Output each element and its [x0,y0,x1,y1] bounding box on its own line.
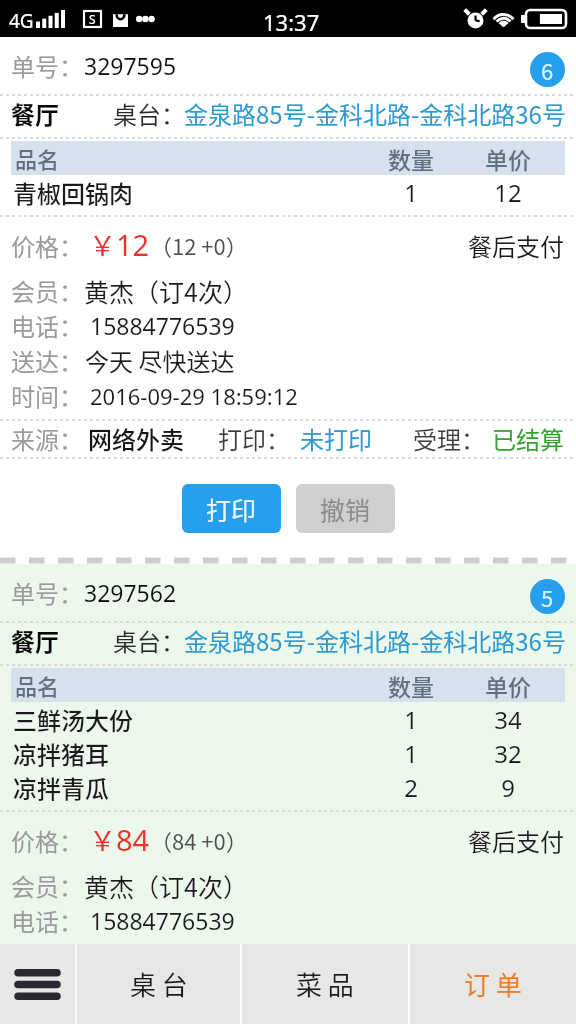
staticText: 单号： [11,48,83,83]
button[interactable]: Menu [0,944,75,1024]
staticText: 已结算 [492,421,564,455]
staticText: 未打印 [300,421,372,455]
button[interactable]: 6 [530,52,565,87]
staticText: 单价 [448,669,568,702]
staticText: 餐后支付 [468,823,564,858]
staticText: 网络外卖 [88,421,184,455]
staticText: ￥84 [89,820,150,860]
staticText: 会员： [11,273,83,308]
staticText: 价格： [11,823,83,858]
staticText: 黄杰（订4次） [84,273,248,308]
staticText: 1 [351,737,471,770]
staticText: 餐厅 [11,96,59,128]
button[interactable]: 菜 品 [242,944,408,1024]
staticText: 餐厅 [11,623,59,655]
button[interactable]: 撤销 [296,484,395,533]
staticText: 金泉路85号-金科北路-金科北路36号 [184,623,566,655]
staticText: 15884776539 [90,905,235,936]
staticText: 黄杰（订4次） [84,868,248,903]
staticText: 电话： [11,308,83,343]
staticText: 3297562 [84,577,177,608]
staticText: 5 [541,581,554,613]
staticText: 桌 台 [130,965,188,1003]
staticText: 打印： [218,421,290,455]
staticText: 撤销 [320,491,371,527]
staticText: 32 [448,737,568,770]
staticText: 12 [448,176,568,209]
staticText: 1 [351,703,471,736]
staticText: 餐后支付 [468,228,564,263]
staticText: 桌台： [113,96,185,128]
button[interactable]: 桌 台 [77,944,240,1024]
button[interactable]: 订 单 [410,944,576,1024]
staticText: 电话： [11,903,83,938]
staticText: 桌台： [113,623,185,655]
staticText: （12 +0） [150,229,248,261]
staticText: 品名 [15,669,60,701]
staticText: 34 [448,703,568,736]
staticText: 凉拌青瓜 [13,770,109,804]
staticText: 价格： [11,228,83,263]
staticText: 4G [9,8,34,34]
staticText: 打印 [206,491,257,527]
staticText: 6 [541,54,554,86]
staticText: 今天 尽快送达 [85,343,235,378]
staticText: 单号： [11,575,83,610]
staticText: 会员： [11,868,83,903]
button[interactable]: 5 [530,579,565,614]
staticText: S [89,11,96,27]
staticText: 15884776539 [90,310,235,341]
staticText: 2 [351,771,471,804]
staticText: 送达： [11,343,83,378]
staticText: 2016-09-29 18:59:12 [90,381,298,411]
staticText: 来源： [11,421,83,455]
staticText: ￥12 [89,225,150,265]
staticText: 受理： [413,421,485,455]
staticText: 品名 [15,142,60,174]
staticText: 凉拌猪耳 [13,736,109,770]
staticText: 13:37 [263,7,320,37]
staticText: 9 [448,771,568,804]
staticText: 时间： [11,378,83,413]
staticText: 1 [351,176,471,209]
staticText: 订 单 [464,965,522,1003]
staticText: 菜 品 [296,965,354,1003]
staticText: 青椒回锅肉 [13,175,133,209]
staticText: 3297595 [84,50,177,81]
staticText: 金泉路85号-金科北路-金科北路36号 [184,96,566,128]
staticText: 数量 [351,142,471,175]
staticText: 数量 [351,669,471,702]
button[interactable]: 餐厅 [0,96,576,128]
staticText: （84 +0） [150,824,248,856]
button[interactable]: 打印 [182,484,281,533]
staticText: 单价 [448,142,568,175]
button[interactable]: 餐厅 [0,623,576,655]
staticText: 三鲜汤大份 [13,702,133,736]
